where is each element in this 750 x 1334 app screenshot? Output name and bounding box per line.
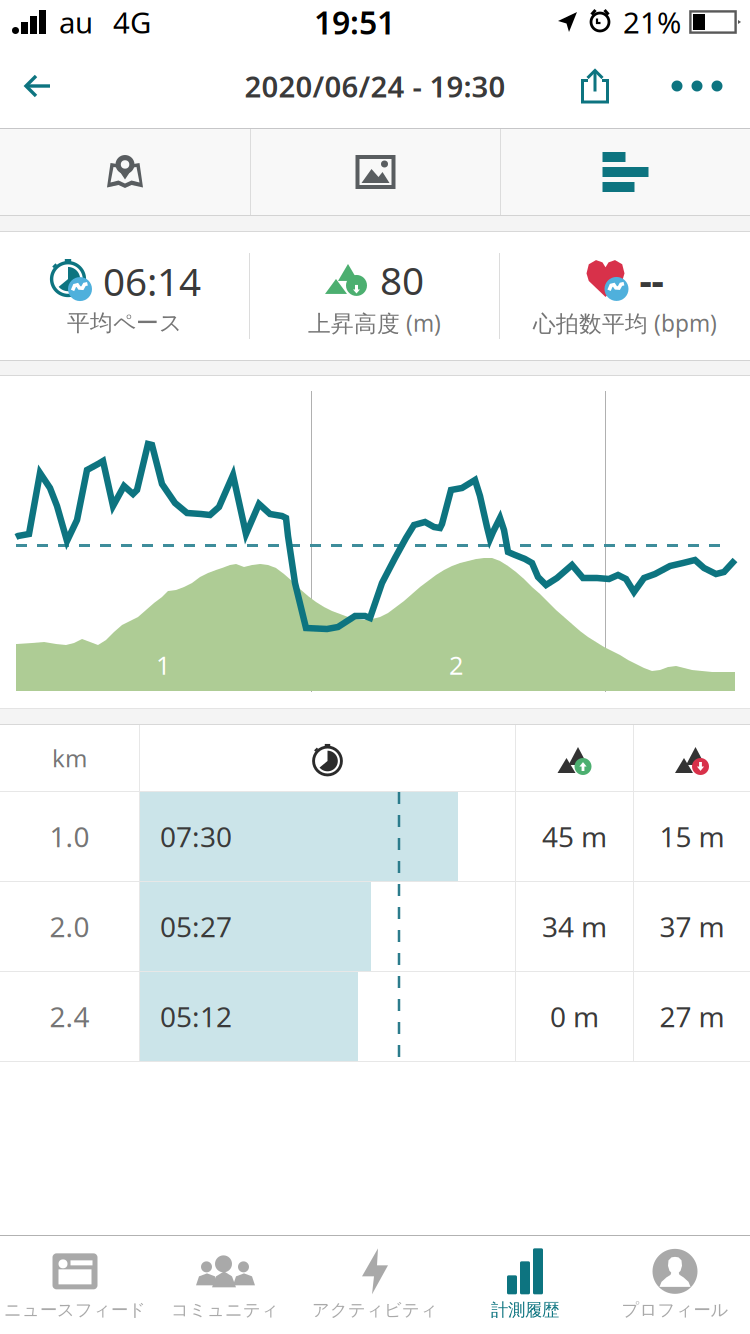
staticText: au [59,2,93,41]
button[interactable]: Photos [251,129,500,215]
button[interactable]: アクティビティ [300,1236,450,1334]
staticText: 4G [113,2,151,41]
button[interactable]: More options [644,44,750,128]
staticText: 34 m [542,908,607,945]
staticText: 27 m [659,998,724,1035]
staticText: 1 [156,648,170,682]
staticText: 心拍数平均 (bpm) [533,308,717,338]
button[interactable]: Map [0,129,250,215]
staticText: 19:51 [314,1,395,43]
staticText: 1.0 [49,818,89,855]
staticText: 21% [623,2,681,41]
staticText: 07:30 [160,818,232,855]
staticText: 15 m [659,818,724,855]
staticText: 2 [449,648,463,682]
staticText: 45 m [542,818,607,855]
button[interactable]: Share [546,44,644,128]
staticText: 05:12 [160,998,232,1035]
button[interactable]: コミュニティ [150,1236,300,1334]
staticText: 05:27 [160,908,232,945]
staticText: ニュースフィード [4,1299,146,1321]
button[interactable]: 計測履歴 [450,1236,600,1334]
staticText: 06:14 [103,255,201,307]
staticText: 2020/06/24 - 19:30 [244,66,505,105]
button[interactable]: プロフィール [600,1236,750,1334]
staticText: コミュニティ [171,1299,279,1321]
button[interactable]: Charts [501,129,750,215]
staticText: 37 m [659,908,724,945]
button[interactable]: Back [0,44,76,128]
button[interactable]: ニュースフィード [0,1236,150,1334]
staticText: 計測履歴 [491,1299,559,1321]
staticText: 2.4 [49,998,89,1035]
staticText: 2.0 [49,908,89,945]
staticText: 平均ペース [67,309,182,337]
staticText: 80 [380,254,424,306]
staticText: プロフィール [621,1299,728,1321]
staticText: 0 m [550,998,599,1035]
staticText: km [52,742,87,774]
staticText: -- [639,254,663,306]
staticText: アクティビティ [312,1299,438,1321]
staticText: 上昇高度 (m) [308,308,441,338]
